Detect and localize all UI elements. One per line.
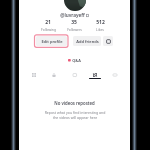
button[interactable]: 35 — [61, 19, 87, 31]
button[interactable]: Videos — [24, 70, 44, 80]
button[interactable]: Edit profile — [36, 36, 67, 46]
button[interactable]: Add friends — [73, 36, 101, 46]
button[interactable]: Bookmarks — [103, 36, 113, 46]
staticText: 21 — [45, 19, 51, 26]
staticText: No videos reposted — [54, 100, 95, 106]
staticText: 35 — [71, 19, 77, 26]
staticText: @luvrayeff — [60, 12, 85, 18]
staticText: Q&A — [72, 58, 81, 63]
staticText: 512 — [96, 19, 105, 26]
button[interactable]: 512 — [87, 19, 113, 31]
staticText: Followers — [67, 27, 82, 31]
staticText: Repost what you find interesting and the… — [42, 110, 108, 120]
button[interactable]: Reposts — [85, 70, 105, 80]
button[interactable]: Liked — [105, 70, 125, 80]
staticText: Following — [41, 27, 56, 31]
button[interactable]: Private — [44, 70, 64, 80]
staticText: Edit profile — [41, 39, 63, 44]
button[interactable]: Favorites — [65, 70, 85, 80]
button[interactable]: 21 — [35, 19, 61, 31]
staticText: Likes — [96, 27, 104, 31]
staticText: Add friends — [76, 39, 99, 44]
